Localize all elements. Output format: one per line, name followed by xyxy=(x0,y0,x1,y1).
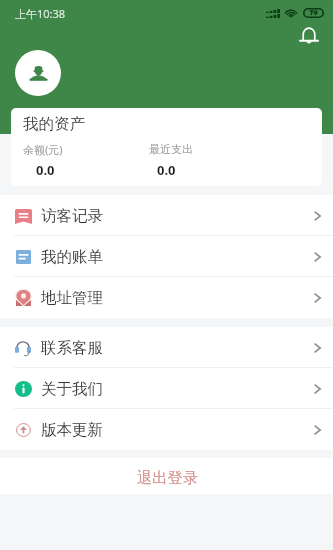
button[interactable]: 地址管理 xyxy=(0,277,333,318)
button[interactable]: 访客记录 xyxy=(0,195,333,236)
button[interactable]: Profile avatar xyxy=(15,50,61,96)
staticText: 访客记录 xyxy=(41,206,103,226)
button[interactable]: Notifications xyxy=(295,22,322,49)
staticText: 上午10:38 xyxy=(15,6,66,21)
button[interactable]: 我的账单 xyxy=(0,236,333,277)
staticText: 0.0 xyxy=(157,161,176,179)
staticText: 版本更新 xyxy=(41,420,103,440)
button[interactable]: 联系客服 xyxy=(0,327,333,368)
staticText: 0.0 xyxy=(36,161,55,179)
staticText: 我的账单 xyxy=(41,247,103,267)
staticText: 余额(元) xyxy=(23,142,63,157)
staticText: 最近支出 xyxy=(149,142,193,156)
staticText: 我的资产 xyxy=(23,114,85,134)
staticText: 关于我们 xyxy=(41,379,103,399)
staticText: 地址管理 xyxy=(41,288,103,308)
button[interactable]: 退出登录 xyxy=(0,458,333,494)
button[interactable]: 版本更新 xyxy=(0,409,333,450)
button[interactable]: 关于我们 xyxy=(0,368,333,409)
staticText: 退出登录 xyxy=(137,468,199,487)
staticText: 联系客服 xyxy=(41,338,103,358)
